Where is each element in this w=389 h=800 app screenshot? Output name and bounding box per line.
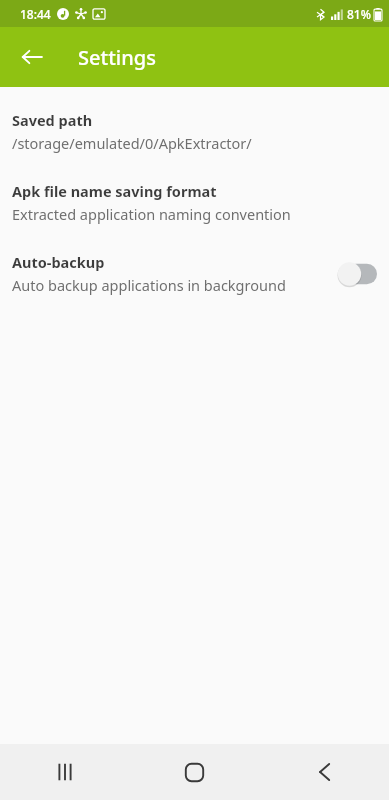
staticText: Settings [78, 44, 156, 71]
button[interactable]: Apk file name saving format [0, 179, 389, 226]
button[interactable]: Saved path [0, 108, 389, 155]
staticText: Apk file name saving format [12, 181, 217, 201]
staticText: /storage/emulated/0/ApkExtractor/ [12, 133, 252, 153]
staticText: Auto-backup [12, 252, 105, 272]
button[interactable]: Auto-backup [0, 250, 389, 297]
staticText: 81% [347, 6, 371, 22]
button[interactable]: Home [129, 744, 259, 800]
button[interactable]: Back [8, 33, 56, 81]
button[interactable]: Back [259, 744, 389, 800]
staticText: Saved path [12, 110, 93, 130]
button[interactable]: Auto-backup toggle [337, 261, 377, 287]
staticText: Extracted application naming convention [12, 204, 291, 224]
button[interactable]: Recent apps [0, 744, 129, 800]
staticText: Auto backup applications in background [12, 275, 286, 295]
staticText: 18:44 [20, 6, 51, 22]
